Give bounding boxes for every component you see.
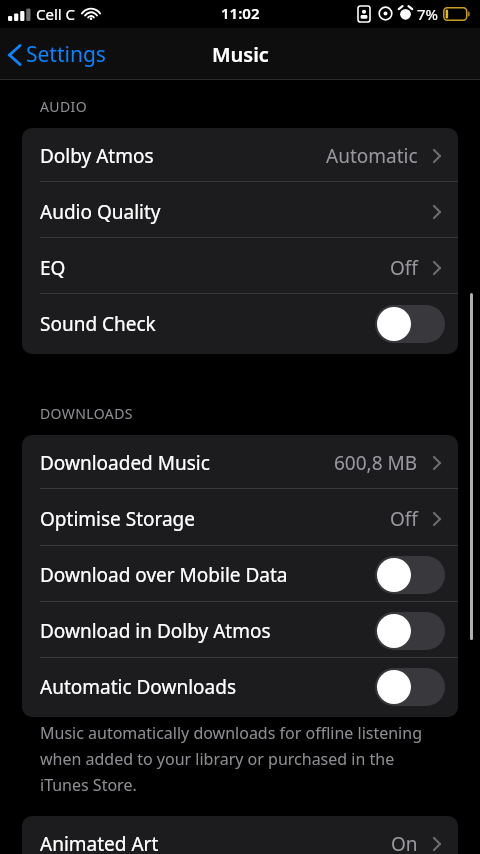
- staticText: Off: [390, 255, 418, 281]
- button[interactable]: Audio Quality: [22, 184, 458, 240]
- button[interactable]: EQ: [22, 240, 458, 296]
- staticText: EQ: [40, 255, 66, 281]
- button[interactable]: Download in Dolby Atmos: [375, 612, 445, 650]
- staticText: Audio Quality: [40, 199, 161, 225]
- staticText: Off: [390, 506, 418, 532]
- button[interactable]: Download over Mobile Data: [375, 556, 445, 594]
- staticText: Downloaded Music: [40, 450, 210, 476]
- staticText: Download over Mobile Data: [40, 562, 288, 588]
- staticText: when added to your library or purchased …: [40, 748, 395, 770]
- button[interactable]: Automatic Downloads: [22, 659, 458, 715]
- button[interactable]: Automatic Downloads: [375, 668, 445, 706]
- staticText: Music: [212, 41, 269, 68]
- staticText: Animated Art: [40, 831, 159, 854]
- staticText: Music automatically downloads for offlin…: [40, 722, 422, 744]
- staticText: 600,8 MB: [334, 450, 418, 476]
- button[interactable]: Downloaded Music: [22, 435, 458, 491]
- staticText: On: [391, 831, 418, 854]
- staticText: AUDIO: [40, 97, 88, 116]
- staticText: Automatic: [326, 143, 418, 169]
- button[interactable]: Optimise Storage: [22, 491, 458, 547]
- staticText: Dolby Atmos: [40, 143, 154, 169]
- button[interactable]: Download in Dolby Atmos: [22, 603, 458, 659]
- staticText: 11:02: [221, 3, 260, 23]
- button[interactable]: Download over Mobile Data: [22, 547, 458, 603]
- button[interactable]: Settings: [0, 34, 114, 75]
- staticText: Optimise Storage: [40, 506, 196, 532]
- button[interactable]: Sound Check: [22, 296, 458, 352]
- staticText: Download in Dolby Atmos: [40, 618, 271, 644]
- staticText: Sound Check: [40, 311, 156, 337]
- staticText: 7%: [417, 4, 439, 24]
- button[interactable]: Sound Check: [375, 305, 445, 343]
- staticText: iTunes Store.: [40, 774, 137, 796]
- staticText: Automatic Downloads: [40, 674, 236, 700]
- button[interactable]: Dolby Atmos: [22, 128, 458, 184]
- staticText: DOWNLOADS: [40, 404, 133, 423]
- staticText: Settings: [26, 40, 106, 69]
- button[interactable]: Animated Art: [22, 816, 458, 854]
- staticText: Cell C: [36, 4, 76, 24]
